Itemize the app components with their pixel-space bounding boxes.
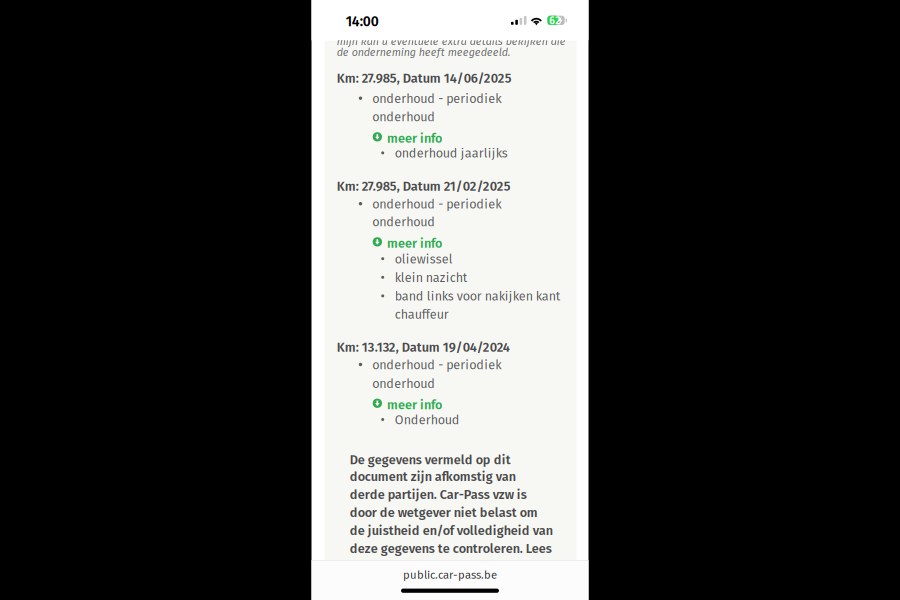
staticText: klein nazicht [395,270,468,285]
staticText: deze gegevens te controleren. Lees [350,541,552,556]
staticText: 14:00 [346,13,379,30]
staticText: de onderneming heeft meegedeeld. [337,46,511,59]
staticText: onderhoud jaarlijks [395,146,508,161]
staticText: meer info [387,131,442,146]
button[interactable]: public.car-pass.be [375,567,525,583]
staticText: de juistheid en/of volledigheid van [350,523,553,538]
staticText: onderhoud - periodiek [372,197,501,212]
staticText: public.car-pass.be [403,568,497,582]
staticText: meer info [387,236,442,251]
staticText: oliewissel [395,252,453,267]
staticText: band links voor nakijken kant [395,289,561,304]
staticText: onderhoud [372,109,435,124]
staticText: Km: 27.985, Datum 14/06/2025 [337,71,512,86]
staticText: chauffeur [395,307,449,322]
staticText: De gegevens vermeld op dit [350,452,511,468]
button[interactable]: meer info [373,131,433,143]
staticText: door de wetgever niet belast om [350,505,538,520]
staticText: 62 [549,15,560,27]
staticText: derde partijen. Car-Pass vzw is [350,487,527,502]
staticText: mijn kan u eventuele extra details bekij… [337,35,566,48]
staticText: document zijn afkomstig van [350,469,516,484]
button[interactable]: meer info [373,236,433,248]
staticText: onderhoud - periodiek [372,357,501,372]
staticText: onderhoud [372,214,435,229]
staticText: Km: 27.985, Datum 21/02/2025 [337,179,511,194]
staticText: onderhoud - periodiek [372,91,501,106]
button[interactable]: meer info [373,397,433,409]
staticText: meer info [387,397,442,413]
staticText: Km: 13.132, Datum 19/04/2024 [337,340,510,355]
staticText: onderhoud [372,376,435,391]
staticText: Onderhoud [395,412,460,427]
